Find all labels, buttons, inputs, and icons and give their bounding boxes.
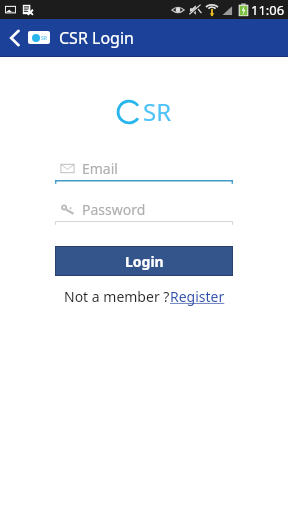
staticText: Register	[170, 287, 225, 306]
staticText: SR	[41, 35, 47, 42]
button[interactable]: Email	[55, 158, 233, 178]
staticText: SR	[143, 95, 172, 128]
button[interactable]: Login	[55, 246, 233, 276]
button[interactable]: Register	[170, 287, 225, 306]
button[interactable]: Password	[55, 199, 233, 219]
staticText: CSR Login	[59, 27, 134, 49]
button[interactable]: Back	[0, 19, 288, 56]
staticText: Password	[82, 200, 146, 219]
staticText: Login	[125, 252, 164, 271]
staticText: Email	[82, 159, 118, 178]
other: Back	[7, 25, 23, 51]
staticText: Not a member ?	[64, 287, 170, 306]
staticText: 11:06	[251, 1, 285, 19]
